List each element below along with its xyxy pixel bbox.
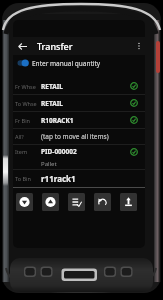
button[interactable]: All?: [13, 129, 145, 145]
staticText: Item: [15, 148, 41, 155]
button[interactable]: Submit: [120, 193, 137, 211]
staticText: Pallet: [41, 160, 57, 168]
staticText: All?: [15, 133, 41, 140]
staticText: RETAIL: [41, 99, 63, 108]
button[interactable]: Item: [13, 145, 145, 170]
button[interactable]: Review list: [68, 193, 85, 211]
staticText: Transfer: [37, 40, 73, 52]
button[interactable]: Back: [16, 40, 29, 53]
staticText: Fr Whse: [15, 83, 41, 90]
staticText: Fr Bin: [15, 117, 41, 124]
button[interactable]: Fr Whse: [13, 78, 145, 95]
staticText: To Bin: [15, 175, 41, 182]
staticText: R10RACK1: [41, 116, 74, 125]
button[interactable]: Scan up: [42, 193, 59, 211]
button[interactable]: Scan down: [16, 193, 33, 211]
staticText: To Whse: [15, 100, 41, 107]
button[interactable]: More options: [133, 37, 145, 55]
staticText: RETAIL: [41, 82, 63, 91]
staticText: Enter manual quantity: [32, 59, 101, 68]
button[interactable]: Fr Bin: [13, 112, 145, 129]
staticText: PID-000002: [41, 147, 77, 156]
button[interactable]: To Whse: [13, 95, 145, 112]
button[interactable]: Undo: [94, 193, 111, 211]
staticText: r11rack1: [41, 173, 76, 184]
button[interactable]: To Bin: [13, 170, 145, 188]
staticText: (tap to move all items): [41, 132, 109, 141]
button[interactable]: Scan trigger: [156, 41, 160, 73]
button[interactable]: Enter manual quantity: [13, 55, 145, 78]
